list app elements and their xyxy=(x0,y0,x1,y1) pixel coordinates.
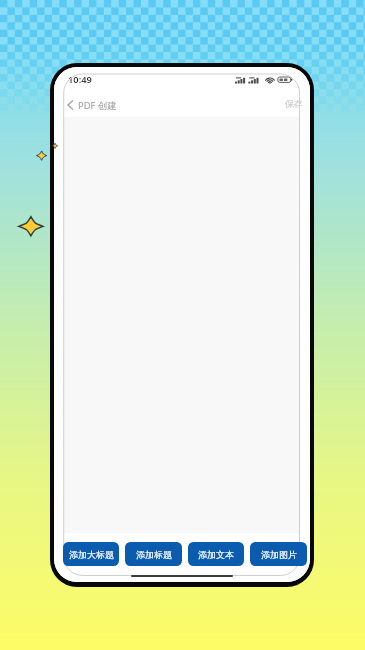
button[interactable]: 保存 xyxy=(282,96,306,113)
staticText: 添加大标题 xyxy=(69,549,114,560)
staticText: 添加标题 xyxy=(136,549,172,560)
staticText: 10:49 xyxy=(68,73,92,86)
button[interactable]: 添加图片 xyxy=(250,542,307,566)
button[interactable]: Back xyxy=(65,97,119,113)
other: Back xyxy=(67,100,73,110)
staticText: 添加图片 xyxy=(261,549,297,560)
button[interactable]: 添加标题 xyxy=(125,542,182,566)
staticText: PDF 创建 xyxy=(78,99,117,112)
staticText: 添加文本 xyxy=(198,549,234,560)
button[interactable]: 添加大标题 xyxy=(63,542,119,566)
button[interactable]: 添加文本 xyxy=(188,542,244,566)
